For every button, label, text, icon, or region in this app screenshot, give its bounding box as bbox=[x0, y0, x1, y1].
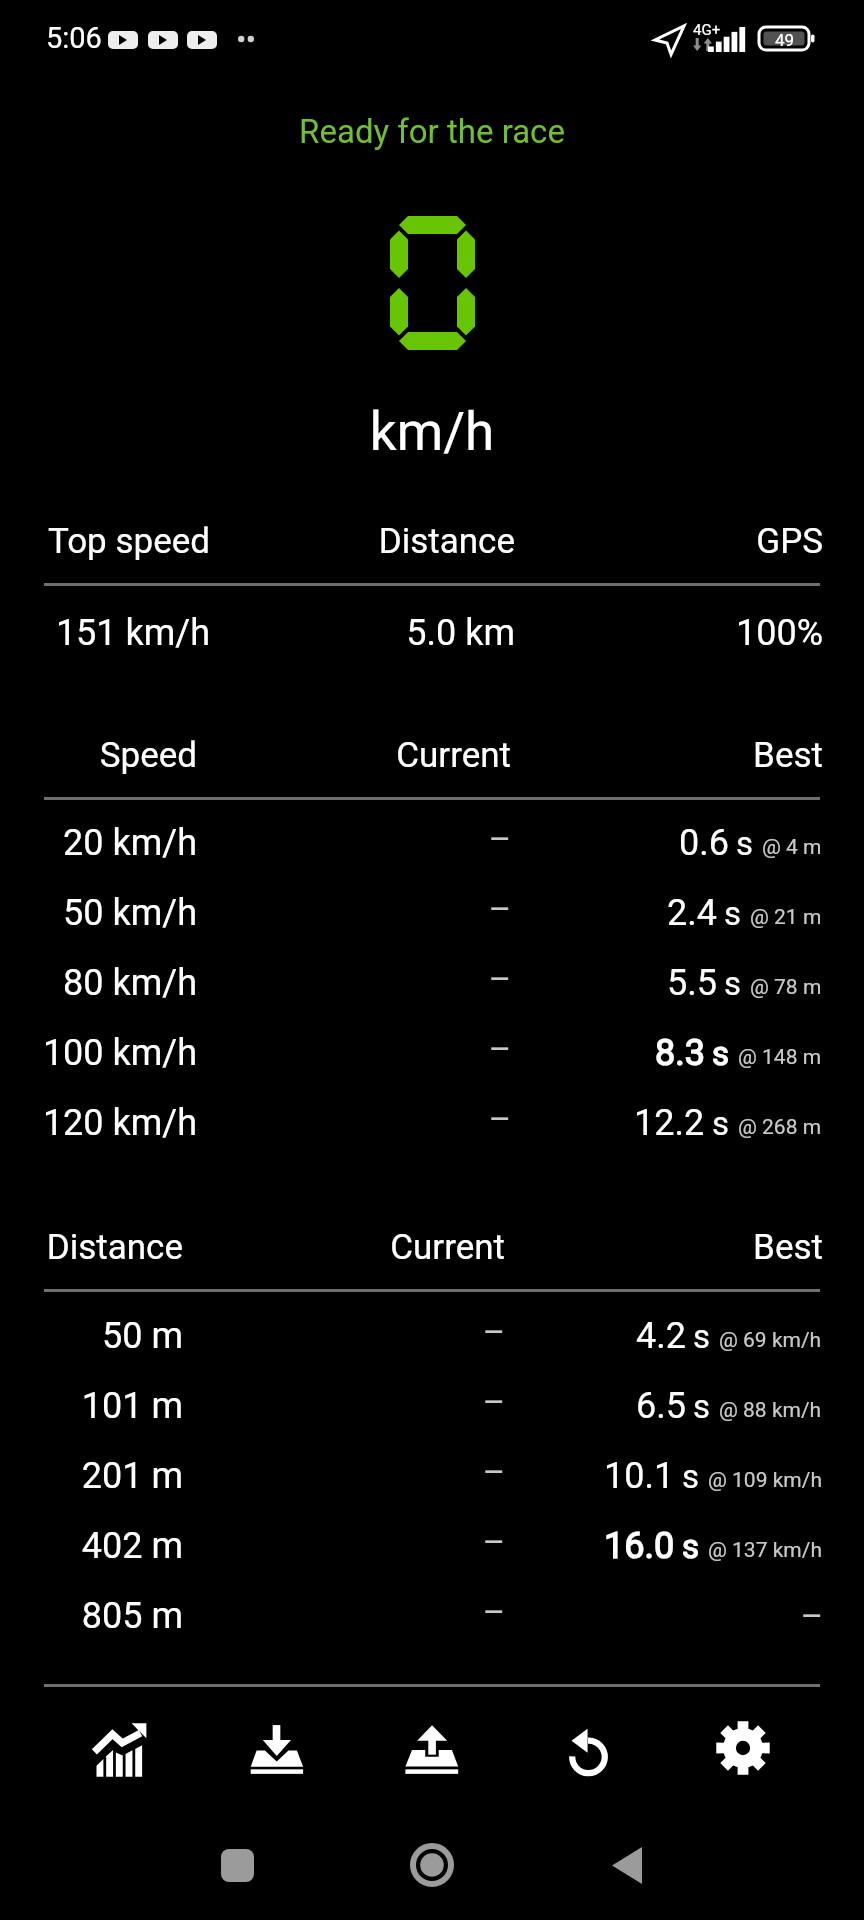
staticText: @ 148 m bbox=[738, 1045, 822, 1070]
button[interactable]: 80 km/h bbox=[0, 947, 864, 1017]
staticText: – bbox=[0, 1596, 823, 1636]
staticText: Current bbox=[0, 1227, 505, 1268]
staticText: – bbox=[0, 1592, 505, 1632]
staticText: @ 4 m bbox=[762, 835, 822, 860]
staticText: 49 bbox=[775, 30, 795, 50]
button[interactable]: Export bbox=[355, 1700, 510, 1796]
staticText: @ 137 km/h bbox=[708, 1538, 822, 1563]
staticText: GPS bbox=[0, 521, 823, 562]
button[interactable]: 50 m bbox=[0, 1300, 864, 1370]
button[interactable]: 120 km/h bbox=[0, 1087, 864, 1157]
staticText: 101 m bbox=[0, 1385, 183, 1427]
staticText: 16.0 bbox=[604, 1525, 675, 1567]
staticText: – bbox=[0, 1099, 511, 1139]
staticText: 50 m bbox=[0, 1315, 183, 1357]
staticText: Top speed bbox=[0, 521, 210, 562]
button[interactable]: 100 km/h bbox=[0, 1017, 864, 1087]
staticText: 0.6 bbox=[679, 822, 729, 864]
staticText: s bbox=[712, 1104, 730, 1143]
staticText: @ 78 m bbox=[750, 975, 822, 1000]
button[interactable]: Recents bbox=[210, 1838, 264, 1892]
staticText: 80 km/h bbox=[0, 962, 197, 1004]
staticText: s bbox=[736, 824, 754, 863]
staticText: – bbox=[0, 959, 511, 999]
staticText: 5.5 bbox=[667, 962, 717, 1004]
button[interactable]: Reset bbox=[510, 1700, 665, 1796]
staticText: s bbox=[693, 1317, 711, 1356]
staticText: s bbox=[724, 894, 742, 933]
staticText: Distance bbox=[0, 1227, 183, 1268]
staticText: Best bbox=[0, 735, 823, 776]
staticText: – bbox=[0, 819, 511, 859]
staticText: 805 m bbox=[0, 1595, 183, 1637]
staticText: 151 km/h bbox=[0, 612, 210, 654]
staticText: @ 109 km/h bbox=[708, 1468, 822, 1493]
staticText: @ 69 km/h bbox=[719, 1328, 822, 1353]
staticText: s bbox=[724, 964, 742, 1003]
staticText: 5:06 bbox=[46, 21, 102, 55]
staticText: 120 km/h bbox=[0, 1102, 197, 1144]
staticText: s bbox=[682, 1457, 700, 1496]
staticText: – bbox=[0, 1522, 505, 1562]
staticText: Ready for the race bbox=[0, 112, 864, 151]
staticText: Speed bbox=[0, 735, 197, 776]
button[interactable]: Statistics bbox=[44, 1700, 200, 1796]
staticText: @ 21 m bbox=[750, 905, 822, 930]
button[interactable]: 402 m bbox=[0, 1510, 864, 1580]
staticText: – bbox=[0, 1452, 505, 1492]
staticText: – bbox=[0, 1312, 505, 1352]
staticText: 402 m bbox=[0, 1525, 183, 1567]
staticText: Best bbox=[0, 1227, 823, 1268]
button[interactable]: 50 km/h bbox=[0, 877, 864, 947]
button[interactable]: Import bbox=[200, 1700, 355, 1796]
button[interactable]: 20 km/h bbox=[0, 807, 864, 877]
staticText: 8.3 bbox=[655, 1032, 705, 1074]
staticText: 2.4 bbox=[667, 892, 717, 934]
staticText: 4G+ bbox=[693, 21, 721, 39]
button[interactable]: Home bbox=[402, 1835, 462, 1895]
staticText: @ 88 km/h bbox=[719, 1398, 822, 1423]
staticText: – bbox=[0, 1382, 505, 1422]
staticText: 10.1 bbox=[604, 1455, 675, 1497]
staticText: km/h bbox=[0, 401, 864, 463]
staticText: 6.5 bbox=[636, 1385, 686, 1427]
staticText: – bbox=[0, 1029, 511, 1069]
button[interactable]: Back bbox=[600, 1838, 654, 1892]
staticText: 20 km/h bbox=[0, 822, 197, 864]
staticText: 12.2 bbox=[634, 1102, 705, 1144]
staticText: – bbox=[0, 889, 511, 929]
button[interactable]: 201 m bbox=[0, 1440, 864, 1510]
staticText: 100% bbox=[0, 612, 823, 654]
staticText: Current bbox=[0, 735, 511, 776]
staticText: Distance bbox=[0, 521, 515, 562]
staticText: 4.2 bbox=[636, 1315, 686, 1357]
staticText: 201 m bbox=[0, 1455, 183, 1497]
staticText: s bbox=[712, 1034, 730, 1073]
staticText: 5.0 km bbox=[0, 612, 515, 654]
button[interactable]: Settings bbox=[665, 1700, 820, 1796]
staticText: @ 268 m bbox=[738, 1115, 822, 1140]
button[interactable]: 805 m bbox=[0, 1580, 864, 1650]
staticText: 50 km/h bbox=[0, 892, 197, 934]
staticText: 100 km/h bbox=[0, 1032, 197, 1074]
staticText: s bbox=[693, 1387, 711, 1426]
button[interactable]: 101 m bbox=[0, 1370, 864, 1440]
staticText: s bbox=[682, 1527, 700, 1566]
